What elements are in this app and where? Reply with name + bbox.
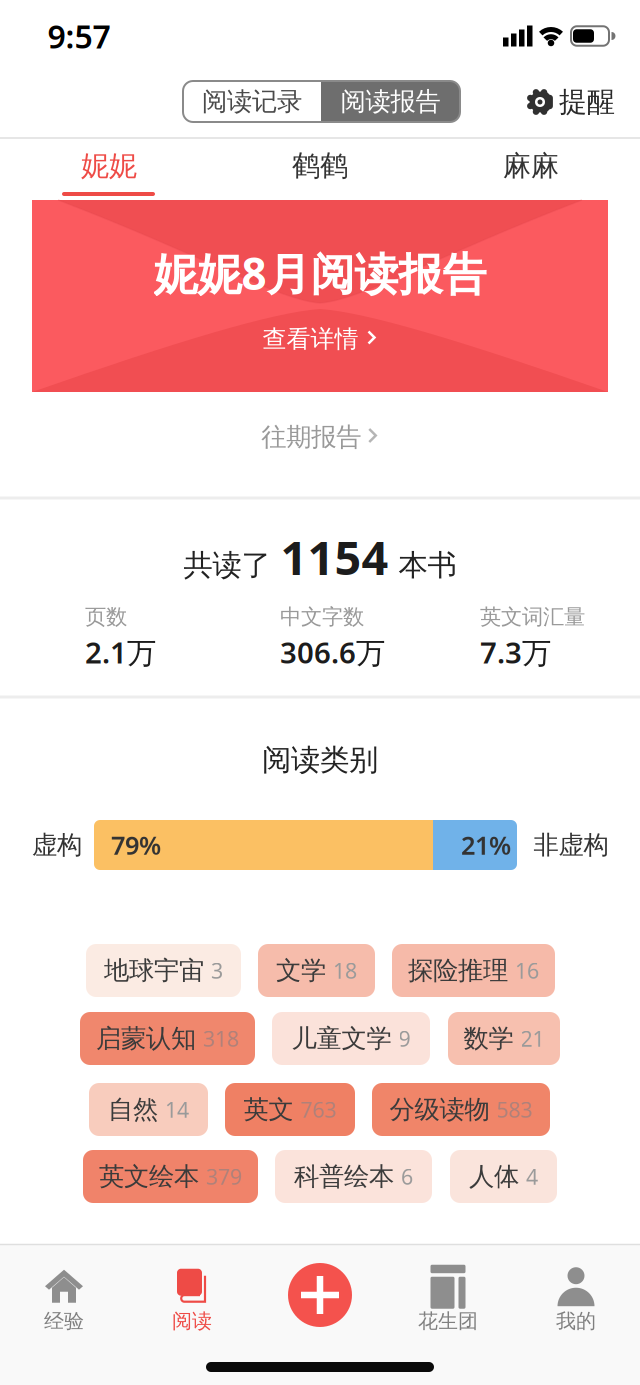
staticText: 英文绘本 (99, 1161, 199, 1192)
staticText: 花生团 (418, 1309, 478, 1333)
staticText: 583 (496, 1095, 532, 1124)
staticText: 我的 (556, 1309, 596, 1333)
button[interactable]: 经验 (44, 1267, 84, 1333)
staticText: 页数 (85, 604, 127, 630)
button[interactable]: 自然 (89, 1083, 208, 1136)
button[interactable]: 添加 (288, 1263, 352, 1327)
staticText: 虚构 (32, 829, 82, 860)
staticText: 妮妮 (81, 149, 137, 183)
staticText: 分级读物 (389, 1094, 489, 1125)
button[interactable]: 探险推理 (392, 944, 555, 997)
button[interactable]: 人体 (450, 1150, 557, 1203)
staticText: 79% (111, 828, 161, 862)
button[interactable]: 文学 (258, 944, 375, 997)
staticText: 1154 (280, 526, 388, 588)
button[interactable]: 提醒 (527, 85, 615, 119)
button[interactable]: 儿童文学 (272, 1012, 430, 1065)
staticText: 21 (520, 1024, 544, 1053)
button[interactable]: 鹤鹤 (260, 141, 380, 191)
staticText: 经验 (44, 1309, 84, 1333)
staticText: 阅读记录 (202, 86, 302, 117)
staticText: 318 (203, 1024, 239, 1053)
staticText: 查看详情 (262, 324, 358, 354)
staticText: 往期报告 (261, 421, 361, 452)
staticText: 非虚构 (533, 829, 608, 860)
button[interactable]: 科普绘本 (275, 1150, 432, 1203)
staticText: 18 (333, 956, 357, 985)
staticText: 3 (211, 956, 223, 985)
staticText: 阅读报告 (340, 86, 440, 117)
staticText: 16 (515, 956, 539, 985)
staticText: 379 (206, 1162, 242, 1191)
staticText: 本书 (398, 547, 456, 583)
button[interactable]: 阅读报告 (321, 81, 460, 122)
button[interactable]: 花生团 (418, 1267, 478, 1333)
staticText: 英文 (243, 1094, 293, 1125)
button[interactable]: 麻麻 (471, 141, 591, 191)
staticText: 文学 (276, 955, 326, 986)
staticText: 提醒 (559, 85, 615, 119)
staticText: 9 (398, 1024, 410, 1053)
staticText: 306.6万 (280, 632, 385, 671)
button[interactable]: 妮妮 (49, 141, 169, 191)
staticText: 21% (461, 828, 511, 862)
staticText: 自然 (108, 1094, 158, 1125)
staticText: 妮妮8月阅读报告 (153, 244, 486, 302)
staticText: 英文词汇量 (480, 604, 585, 630)
staticText: 人体 (469, 1161, 519, 1192)
button[interactable]: 英文绘本 (83, 1150, 258, 1203)
button[interactable]: 往期报告 (261, 421, 379, 452)
staticText: 763 (300, 1095, 336, 1124)
button[interactable]: 妮妮8月阅读报告 (32, 200, 608, 392)
staticText: 地球宇宙 (104, 955, 204, 986)
button[interactable]: 地球宇宙 (86, 944, 241, 997)
staticText: 阅读类别 (262, 742, 378, 778)
button[interactable]: 分级读物 (372, 1083, 550, 1136)
staticText: 启蒙认知 (96, 1023, 196, 1054)
staticText: 中文字数 (280, 604, 364, 630)
button[interactable]: 启蒙认知 (80, 1012, 255, 1065)
button[interactable]: 数学 (448, 1012, 560, 1065)
button[interactable]: 阅读记录 (183, 81, 321, 122)
button[interactable]: 我的 (556, 1267, 596, 1333)
staticText: 共读了 (183, 547, 270, 583)
staticText: 4 (526, 1162, 538, 1191)
staticText: 14 (165, 1095, 189, 1124)
staticText: 探险推理 (408, 955, 508, 986)
staticText: 7.3万 (480, 632, 551, 671)
staticText: 6 (401, 1162, 413, 1191)
button[interactable]: 英文 (225, 1083, 355, 1136)
button[interactable]: 阅读 (172, 1267, 212, 1333)
staticText: 鹤鹤 (292, 149, 348, 183)
staticText: 9:57 (47, 15, 110, 57)
staticText: 科普绘本 (294, 1161, 394, 1192)
staticText: 麻麻 (503, 149, 559, 183)
staticText: 阅读 (172, 1309, 212, 1333)
staticText: 2.1万 (85, 632, 156, 671)
staticText: 数学 (463, 1023, 513, 1054)
staticText: 儿童文学 (291, 1023, 391, 1054)
